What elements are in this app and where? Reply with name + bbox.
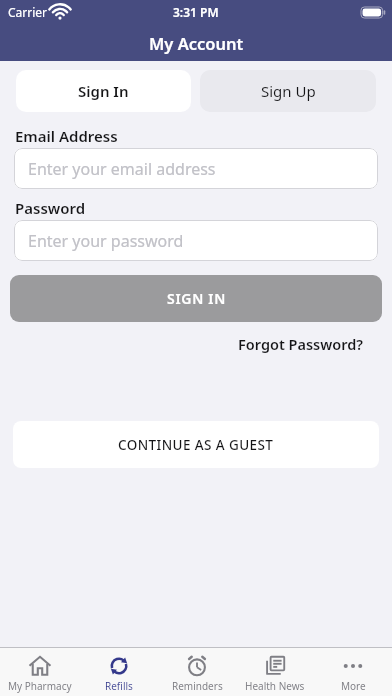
button[interactable]: SIGN IN xyxy=(10,275,382,322)
staticText: Enter your password xyxy=(28,230,184,252)
staticText: More xyxy=(341,679,366,693)
staticText: 3:31 PM xyxy=(173,4,219,20)
staticText: My Pharmacy xyxy=(8,679,72,693)
staticText: Refills xyxy=(105,679,133,693)
button[interactable]: Enter your email address xyxy=(14,148,378,189)
button[interactable]: Reminders xyxy=(158,648,236,696)
staticText: Reminders xyxy=(172,679,223,693)
staticText: Password xyxy=(15,198,86,218)
button[interactable]: Health News xyxy=(236,648,314,696)
button[interactable]: Enter your password xyxy=(14,220,378,261)
button[interactable]: Refills xyxy=(79,648,158,696)
staticText: Email Address xyxy=(15,126,118,146)
staticText: My Account xyxy=(149,32,244,54)
staticText: Enter your email address xyxy=(28,158,216,180)
button[interactable]: Sign In xyxy=(16,70,191,112)
staticText: SIGN IN xyxy=(167,289,226,308)
button[interactable]: CONTINUE AS A GUEST xyxy=(13,421,379,468)
button[interactable]: Forgot Password? xyxy=(238,334,364,354)
staticText: Sign Up xyxy=(261,81,316,101)
button[interactable]: My Pharmacy xyxy=(0,648,79,696)
button[interactable]: Sign Up xyxy=(200,70,376,112)
staticText: Health News xyxy=(245,679,305,693)
staticText: CONTINUE AS A GUEST xyxy=(118,436,274,454)
staticText: Sign In xyxy=(78,81,129,101)
staticText: Carrier xyxy=(8,4,48,20)
button[interactable]: More xyxy=(314,648,392,696)
